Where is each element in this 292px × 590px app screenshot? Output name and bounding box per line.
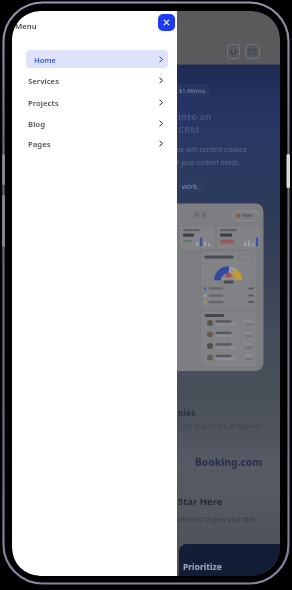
button[interactable]: work: [165, 178, 206, 194]
staticText: Blog: [28, 119, 46, 130]
button[interactable]: Projects: [26, 93, 168, 111]
button[interactable]: Services: [26, 71, 168, 89]
button[interactable]: Pages: [26, 134, 168, 152]
button[interactable]: [179, 544, 280, 576]
button[interactable]: [246, 45, 260, 59]
staticText: ve with content created: [177, 145, 247, 154]
staticText: Projects: [28, 98, 59, 109]
button[interactable]: Home: [26, 50, 168, 68]
staticText: Booking.com: [195, 455, 263, 469]
button[interactable]: [228, 45, 240, 59]
staticText: work: [182, 182, 198, 191]
staticText: Services: [28, 76, 60, 87]
staticText: CRM: [178, 123, 200, 136]
button[interactable]: [158, 14, 175, 31]
staticText: into an: [178, 110, 212, 123]
staticText: e for theirs Core ai Platform: [179, 422, 261, 431]
staticText: Prioritize: [183, 561, 222, 573]
staticText: Pages: [28, 139, 51, 150]
staticText: Home: [34, 55, 56, 65]
staticText: t your content needs.: [177, 158, 240, 167]
staticText: nies: [178, 407, 196, 419]
staticText: Star Here: [178, 495, 223, 508]
staticText: $1.99/mo.: [179, 87, 207, 95]
staticText: services to grow your idea: [178, 515, 256, 524]
button[interactable]: Blog: [26, 114, 168, 132]
staticText: Menu: [15, 21, 37, 32]
